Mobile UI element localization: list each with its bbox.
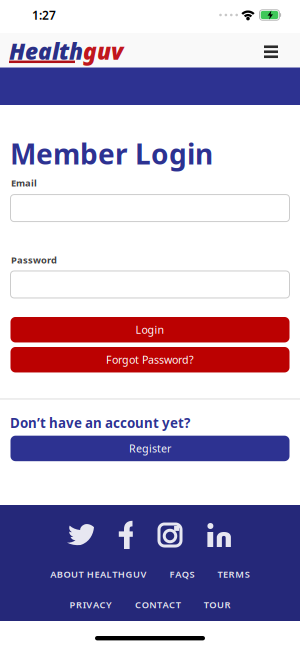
staticText: TERMS — [217, 568, 250, 580]
staticText: PRIVACY — [69, 598, 112, 611]
button[interactable]: CONTACT — [135, 598, 181, 611]
button[interactable]: Register — [10, 436, 289, 461]
staticText: Health — [9, 36, 83, 66]
staticText: Forgot Password? — [106, 353, 194, 367]
staticText: Email — [11, 177, 37, 189]
staticText: CONTACT — [135, 598, 181, 611]
staticText: Login — [135, 323, 164, 337]
button[interactable]: Facebook — [119, 521, 133, 549]
button[interactable]: TOUR — [204, 598, 230, 611]
button[interactable]: PRIVACY — [69, 598, 112, 611]
button[interactable]: TERMS — [217, 568, 250, 580]
button[interactable]: LinkedIn — [207, 523, 233, 547]
staticText: Don’t have an account yet? — [10, 414, 190, 432]
button[interactable]: Twitter — [67, 524, 94, 546]
button[interactable]: Password — [10, 271, 289, 298]
button[interactable]: Instagram — [158, 523, 182, 547]
button[interactable]: Email — [10, 195, 289, 222]
button[interactable]: ABOUT HEALTHGUV — [50, 568, 147, 580]
staticText: FAQS — [170, 568, 194, 580]
staticText: guv — [83, 36, 123, 66]
staticText: 1:27 — [32, 7, 56, 23]
button[interactable]: Menu — [264, 44, 300, 57]
button[interactable]: Forgot Password? — [10, 347, 289, 372]
button[interactable]: FAQS — [170, 568, 194, 580]
staticText: Register — [129, 441, 171, 455]
staticText: TOUR — [204, 598, 230, 611]
staticText: Password — [11, 254, 57, 266]
staticText: ABOUT HEALTHGUV — [50, 568, 147, 580]
button[interactable]: Login — [10, 317, 289, 342]
staticText: Member Login — [10, 135, 213, 172]
